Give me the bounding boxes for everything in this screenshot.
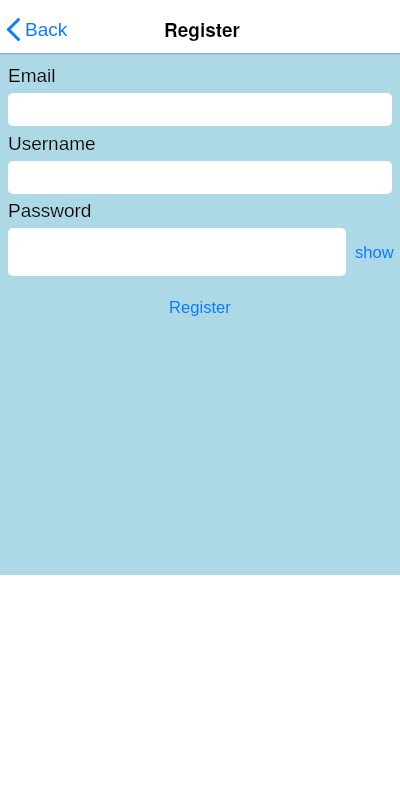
staticText: Password bbox=[8, 200, 92, 221]
button[interactable]: Email input field bbox=[8, 93, 392, 126]
staticText: show bbox=[355, 243, 394, 262]
staticText: Back bbox=[25, 19, 68, 40]
staticText: Register bbox=[169, 298, 231, 317]
button[interactable]: Username input field bbox=[8, 161, 392, 194]
button[interactable]: Register bbox=[159, 292, 241, 323]
staticText: Email bbox=[8, 65, 56, 86]
button[interactable]: Back bbox=[4, 14, 74, 45]
staticText: Username bbox=[8, 133, 96, 154]
staticText: Register bbox=[164, 16, 240, 43]
button[interactable]: show bbox=[355, 237, 394, 268]
